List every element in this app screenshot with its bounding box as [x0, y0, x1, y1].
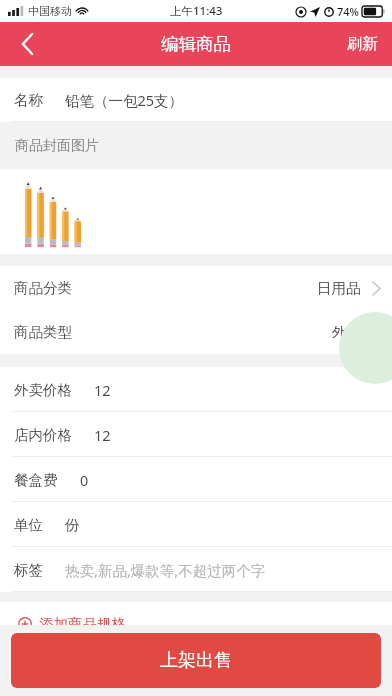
staticText: 0	[80, 470, 89, 490]
button[interactable]: 商品类型	[0, 310, 392, 354]
button[interactable]: 刷新	[333, 22, 392, 66]
staticText: 商品分类	[14, 279, 72, 297]
button[interactable]: 单位	[0, 502, 392, 547]
staticText: 商品类型	[14, 323, 72, 341]
staticText: 74%	[337, 4, 359, 19]
staticText: 标签	[14, 561, 43, 579]
button[interactable]: 店内价格	[0, 412, 392, 457]
staticText: 上午11:43	[170, 3, 223, 19]
staticText: 12	[94, 425, 111, 445]
staticText: 商品封面图片	[15, 137, 99, 155]
staticText: 名称	[14, 91, 43, 109]
staticText: 日用品	[317, 279, 361, 297]
staticText: 铅笔（一包25支）	[65, 90, 184, 110]
staticText: 上架出售	[160, 649, 232, 672]
staticText: 外卖	[332, 323, 361, 341]
button[interactable]: 名称	[0, 78, 392, 122]
button[interactable]: 外卖价格	[0, 367, 392, 412]
button[interactable]: 上架出售	[11, 633, 381, 688]
staticText: 热卖,新品,爆款等,不超过两个字	[65, 560, 266, 580]
button[interactable]	[0, 169, 392, 254]
button[interactable]: Back	[0, 22, 54, 66]
staticText: 编辑商品	[161, 33, 231, 55]
button[interactable]: 餐盒费	[0, 457, 392, 502]
button[interactable]: 商品分类	[0, 266, 392, 310]
staticText: 中国移动	[28, 4, 72, 18]
staticText: 外卖价格	[14, 381, 72, 399]
button[interactable]: 添加商品规格	[0, 602, 392, 646]
staticText: 份	[65, 516, 80, 534]
staticText: 刷新	[347, 34, 378, 54]
staticText: 店内价格	[14, 426, 72, 444]
button[interactable]: 标签	[0, 547, 392, 592]
staticText: 添加商品规格	[39, 615, 126, 633]
staticText: 餐盒费	[14, 471, 58, 489]
staticText: 12	[94, 380, 111, 400]
staticText: 单位	[14, 516, 43, 534]
